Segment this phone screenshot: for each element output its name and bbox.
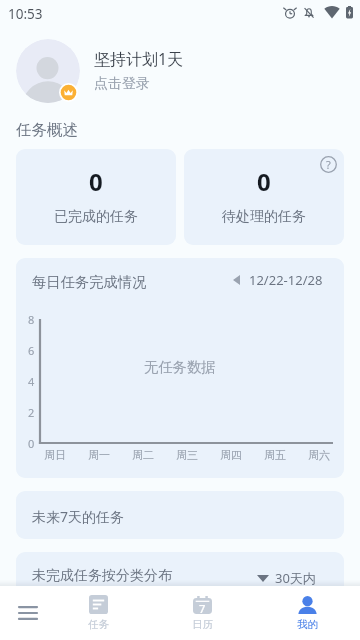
staticText: 周五 [264, 448, 286, 462]
button[interactable]: 任务 [46, 586, 150, 640]
button[interactable]: 未来7天的任务 [16, 491, 344, 539]
button[interactable]: 我的 [255, 586, 360, 640]
staticText: 任务 [88, 618, 109, 631]
staticText: 我的 [297, 618, 318, 631]
staticText: 6 [28, 343, 35, 357]
staticText: 待处理的任务 [222, 208, 306, 226]
button[interactable]: 12/22-12/28 [233, 271, 323, 289]
staticText: 日历 [192, 618, 213, 631]
staticText: 0 [28, 436, 35, 450]
staticText: 周二 [132, 448, 154, 462]
staticText: 2 [28, 405, 35, 419]
staticText: 周四 [220, 448, 242, 462]
staticText: 0 [257, 165, 271, 198]
staticText: 坚持计划1天 [94, 48, 184, 70]
staticText: ? [326, 157, 331, 172]
staticText: 周日 [44, 448, 66, 462]
staticText: 每日任务完成情况 [32, 273, 147, 291]
button[interactable]: 0 [16, 149, 176, 245]
button[interactable]: VIP badge [59, 83, 78, 102]
staticText: 任务概述 [16, 120, 78, 140]
button[interactable]: Avatar [16, 39, 80, 103]
staticText: 周三 [176, 448, 198, 462]
staticText: 无任务数据 [144, 358, 216, 376]
staticText: 周六 [308, 448, 330, 462]
staticText: 30天内 [275, 569, 316, 587]
staticText: 未完成任务按分类分布 [32, 567, 172, 585]
staticText: 4 [28, 374, 35, 388]
staticText: 已完成的任务 [54, 208, 138, 226]
button[interactable]: 7 [150, 586, 255, 640]
staticText: 10:53 [8, 5, 43, 23]
staticText: 8 [28, 312, 35, 326]
staticText: 周一 [88, 448, 110, 462]
button[interactable]: 0 [184, 149, 344, 245]
button[interactable]: 30天内 [257, 569, 316, 587]
staticText: 未来7天的任务 [32, 507, 125, 526]
button[interactable]: 未完成任务按分类分布 [16, 552, 344, 612]
button[interactable]: Menu [0, 586, 46, 640]
staticText: 0 [89, 165, 103, 198]
staticText: 7 [199, 601, 206, 616]
staticText: 12/22-12/28 [249, 271, 323, 289]
button[interactable]: Help [320, 156, 337, 173]
staticText: 点击登录 [94, 75, 150, 93]
